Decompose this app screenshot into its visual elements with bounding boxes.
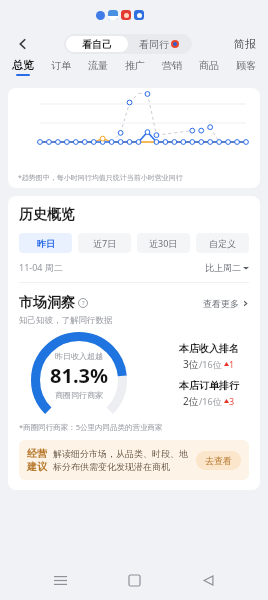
button[interactable]: 简报	[234, 37, 256, 51]
button[interactable]: 营销	[162, 59, 182, 76]
staticText: 看同行	[139, 38, 169, 51]
staticText: 建议	[27, 460, 47, 473]
staticText: 商圈同行商家	[55, 390, 103, 400]
staticText: 总览	[12, 58, 34, 72]
staticText: 标分布供需变化发现潜在商机	[53, 461, 170, 472]
button[interactable]: Back	[10, 31, 36, 57]
staticText: 顾客	[236, 59, 256, 72]
staticText: 历史概览	[19, 206, 75, 224]
staticText: 查看更多	[203, 298, 239, 309]
button[interactable]: 近30日	[137, 233, 190, 253]
button[interactable]: 查看更多	[203, 298, 249, 309]
button[interactable]: 比上周二	[205, 262, 249, 273]
staticText: 11-04 周二	[19, 261, 63, 273]
staticText: 本店收入排名	[179, 342, 239, 355]
staticText: 去查看	[205, 455, 232, 466]
button[interactable]: 经营	[19, 440, 249, 480]
staticText: 昨日	[37, 238, 55, 249]
staticText: 知己知彼，了解同行数据	[19, 315, 113, 326]
button[interactable]: 顾客	[236, 59, 256, 76]
button[interactable]: 看同行	[128, 36, 190, 52]
staticText: 推广	[125, 59, 145, 72]
button[interactable]: 商品	[199, 59, 219, 76]
staticText: *趋势图中，每小时同行均值只统计当前小时营业同行	[18, 173, 183, 183]
button[interactable]: 推广	[125, 59, 145, 76]
staticText: 简报	[234, 37, 256, 51]
button[interactable]: 自定义	[196, 233, 249, 253]
staticText: 比上周二	[205, 262, 241, 273]
button[interactable]: 订单	[51, 59, 71, 76]
staticText: 81.3%	[50, 362, 108, 389]
staticText: 营销	[162, 59, 182, 72]
button[interactable]: Recent apps	[46, 566, 74, 594]
staticText: 经营	[27, 447, 47, 460]
staticText: ?	[82, 299, 85, 307]
staticText: 流量	[88, 59, 108, 72]
staticText: 近7日	[93, 237, 117, 249]
staticText: 1	[229, 358, 235, 370]
button[interactable]: 看自己	[66, 36, 128, 52]
staticText: 近30日	[149, 237, 178, 249]
staticText: 本店订单排行	[179, 379, 239, 392]
staticText: 看自己	[82, 38, 112, 51]
staticText: 订单	[51, 59, 71, 72]
staticText: 市场洞察	[19, 294, 75, 312]
staticText: 商品	[199, 59, 219, 72]
staticText: /16位	[199, 358, 222, 370]
staticText: *商圈同行商家：5公里内同品类的营业商家	[19, 422, 163, 432]
button[interactable]: 昨日	[19, 233, 72, 253]
button[interactable]: 流量	[88, 59, 108, 76]
staticText: 3位	[183, 357, 199, 371]
button[interactable]: Help	[78, 298, 88, 308]
staticText: 昨日收入超越	[55, 351, 103, 361]
staticText: 2位	[183, 394, 199, 408]
button[interactable]: 总览	[12, 58, 34, 76]
staticText: 3	[229, 395, 235, 407]
button[interactable]: 去查看	[196, 451, 241, 470]
button[interactable]: Back	[194, 566, 222, 594]
button[interactable]: 近7日	[78, 233, 131, 253]
staticText: 自定义	[209, 238, 236, 249]
staticText: 解读细分市场，从品类、时段、地	[53, 448, 188, 459]
button[interactable]: Home	[120, 566, 148, 594]
staticText: /16位	[199, 395, 222, 407]
